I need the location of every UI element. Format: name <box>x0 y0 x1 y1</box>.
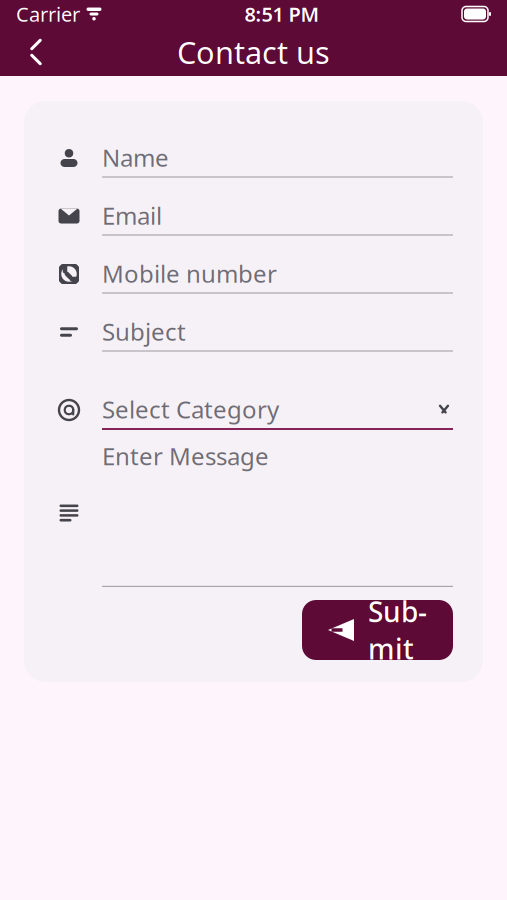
staticText: Submit <box>368 593 427 667</box>
staticText: Name <box>102 141 169 173</box>
button[interactable]: Select Category <box>54 381 453 439</box>
staticText: Carrier <box>16 1 80 27</box>
button[interactable]: Back <box>14 30 58 74</box>
button[interactable]: Subject <box>54 303 453 361</box>
button[interactable]: Mobile number <box>54 245 453 303</box>
staticText: Enter Message <box>102 440 269 472</box>
staticText: Email <box>102 199 162 231</box>
staticText: Subject <box>102 315 186 347</box>
staticText: Contact us <box>177 32 330 72</box>
button[interactable]: Submit <box>302 600 453 660</box>
button[interactable]: Name <box>54 129 453 187</box>
staticText: Mobile number <box>102 257 277 289</box>
button[interactable]: Enter Message <box>54 439 453 587</box>
staticText: 8:51 PM <box>244 1 319 27</box>
staticText: Select Category <box>102 393 279 425</box>
button[interactable]: Email <box>54 187 453 245</box>
